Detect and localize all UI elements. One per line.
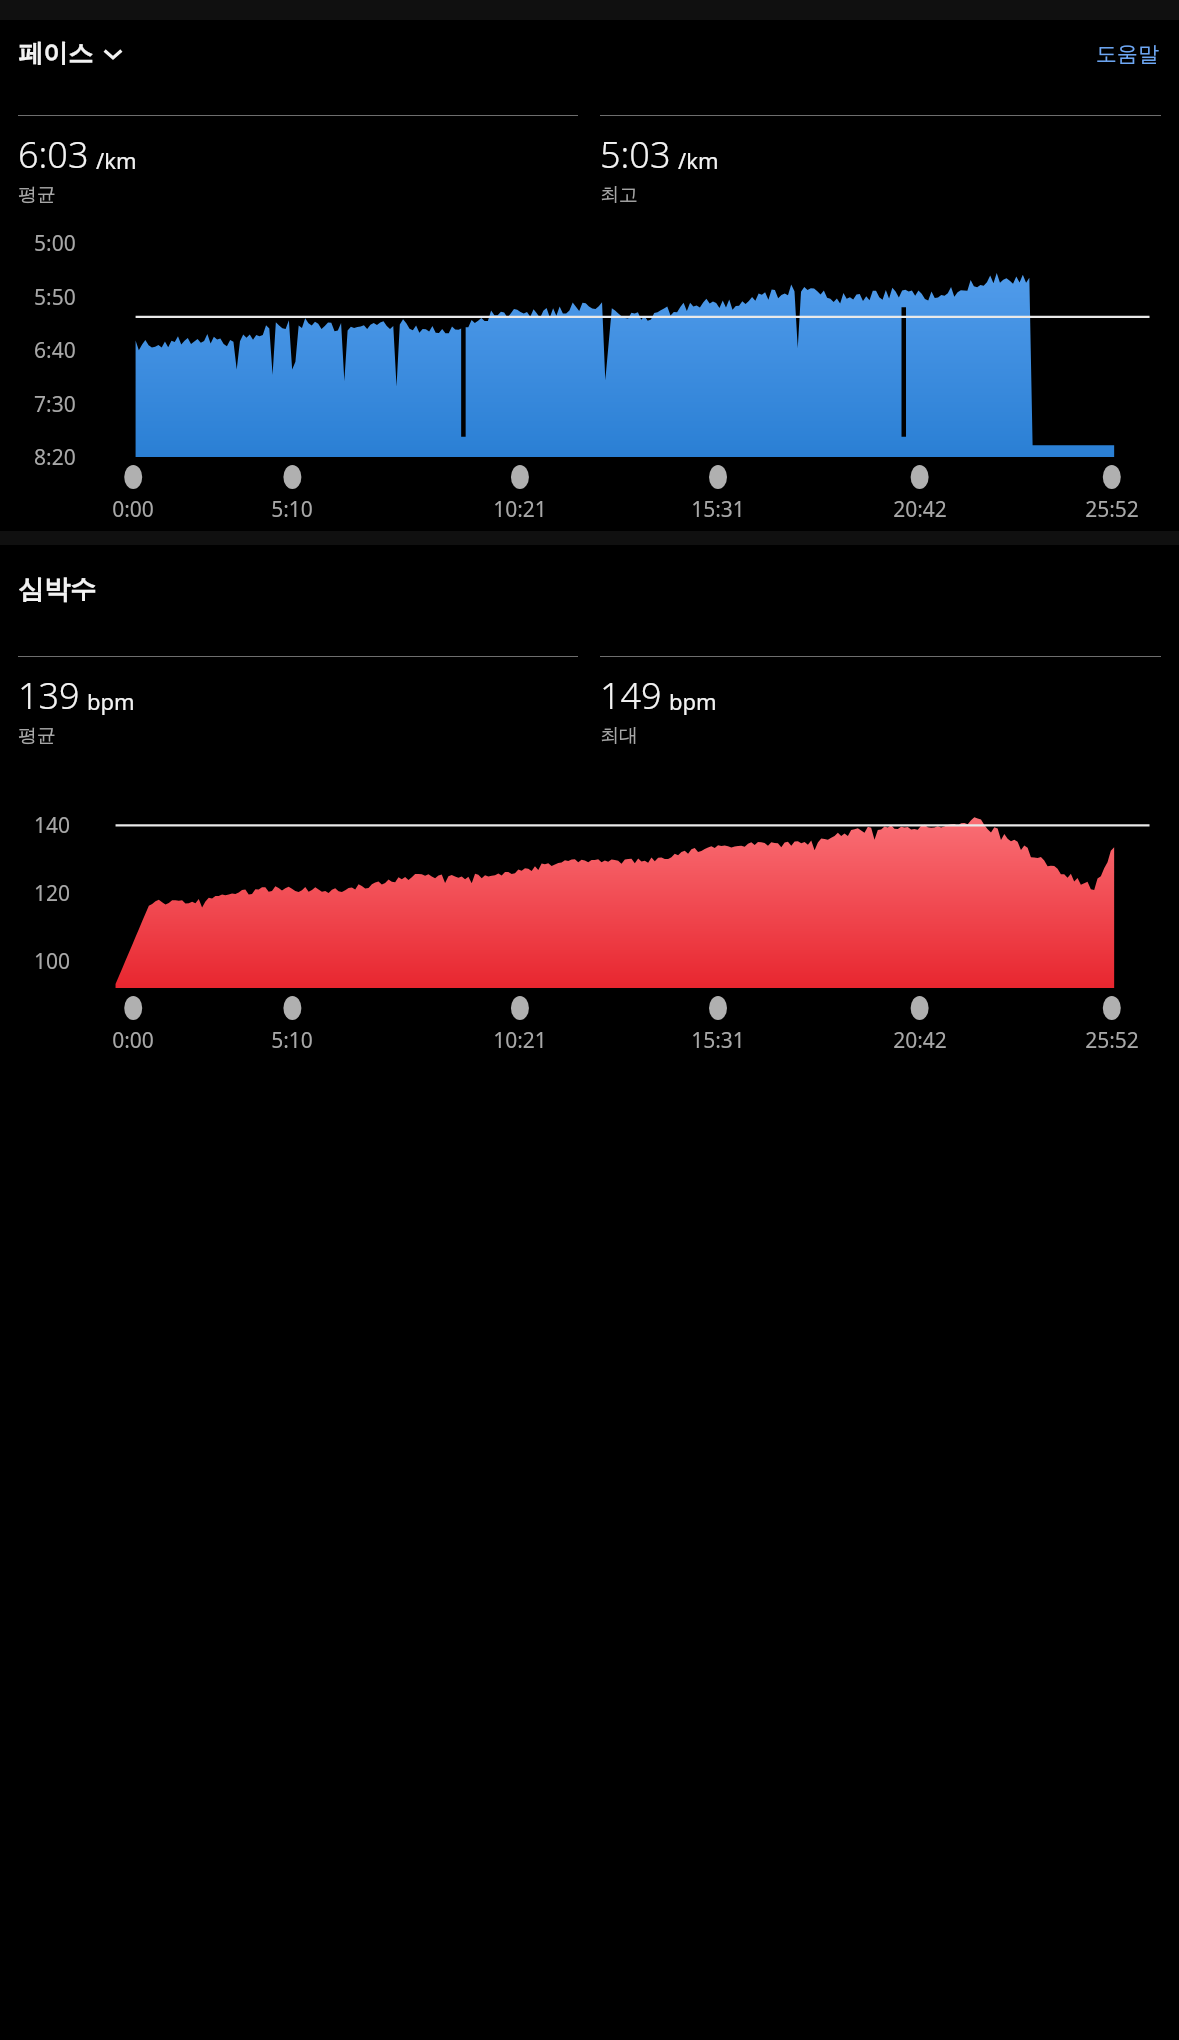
staticText: 6:03 (18, 130, 89, 179)
button[interactable]: 5:03 (600, 115, 1161, 207)
staticText: 25:52 (1042, 1026, 1179, 1055)
staticText: 15:31 (648, 495, 788, 524)
staticText: 5:50 (34, 283, 76, 312)
staticText: 평균 (18, 183, 56, 207)
staticText: 120 (34, 879, 71, 908)
staticText: 평균 (18, 724, 56, 748)
button[interactable]: 도움말 (1094, 37, 1161, 71)
button[interactable]: 6:03 (18, 115, 578, 207)
staticText: 0:00 (63, 495, 203, 524)
staticText: 20:42 (850, 495, 990, 524)
staticText: bpm (87, 686, 135, 716)
staticText: 20:42 (850, 1026, 990, 1055)
staticText: 최대 (600, 724, 638, 748)
staticText: 5:10 (222, 495, 362, 524)
staticText: 5:03 (600, 130, 671, 179)
staticText: 도움말 (1096, 41, 1159, 67)
staticText: 100 (34, 947, 71, 976)
staticText: bpm (669, 686, 717, 716)
staticText: /km (96, 145, 137, 175)
staticText: 10:21 (450, 1026, 590, 1055)
staticText: 7:30 (34, 390, 76, 419)
staticText: /km (678, 145, 719, 175)
staticText: 5:10 (222, 1026, 362, 1055)
staticText: 8:20 (34, 443, 76, 472)
staticText: 139 (18, 671, 80, 720)
staticText: 10:21 (450, 495, 590, 524)
staticText: 15:31 (648, 1026, 788, 1055)
staticText: 6:40 (34, 336, 76, 365)
button[interactable]: 139 (18, 656, 578, 748)
staticText: 최고 (600, 183, 638, 207)
button[interactable]: 149 (600, 656, 1161, 748)
staticText: 140 (34, 811, 71, 840)
button[interactable]: 페이스 (18, 34, 123, 73)
staticText: 0:00 (63, 1026, 203, 1055)
staticText: 심박수 (18, 573, 96, 606)
staticText: 149 (600, 671, 662, 720)
staticText: 페이스 (18, 38, 93, 69)
staticText: 25:52 (1042, 495, 1179, 524)
staticText: 5:00 (34, 229, 76, 258)
button[interactable]: 심박수 (18, 571, 96, 608)
